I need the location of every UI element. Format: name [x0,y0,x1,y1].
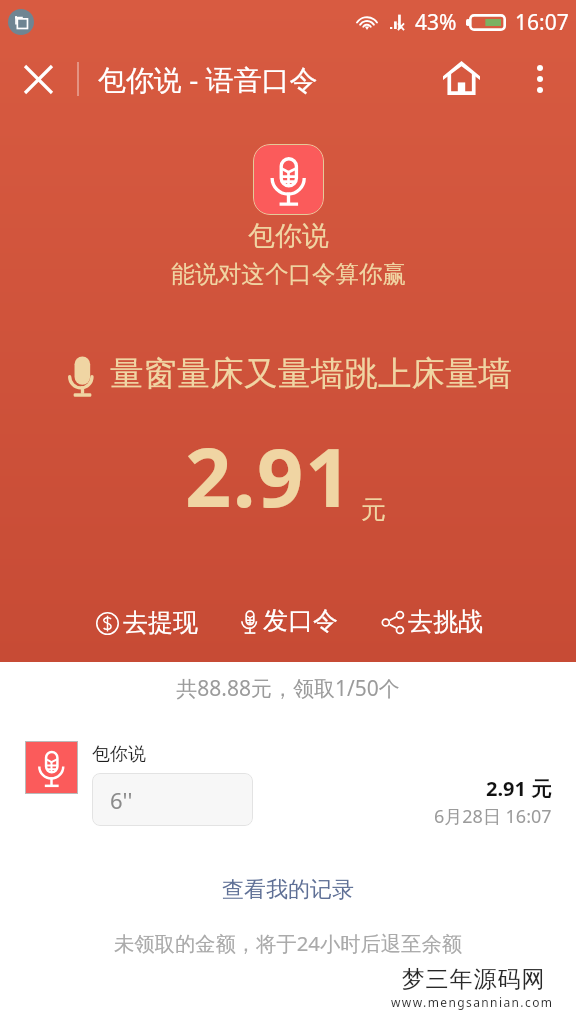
button[interactable]: 查看我的记录 [212,868,364,912]
button[interactable]: Home [437,54,485,102]
button[interactable]: More options [516,55,564,103]
staticText: 发口令 [263,605,338,636]
staticText: 去挑战 [408,606,483,637]
button[interactable]: Sender avatar [25,741,78,794]
staticText: 量窗量床又量墙跳上床量墙 [110,353,512,395]
staticText: 包你说 - 语音口令 [98,60,318,98]
button[interactable]: Play 6 second voice [92,773,253,826]
staticText: 2.91 元 [486,775,552,802]
staticText: 43% [415,8,457,37]
button[interactable]: Close [14,55,62,103]
staticText: 未领取的金额，将于24小时后退至余额 [0,929,576,957]
staticText: 梦三年源码网 [401,965,545,994]
button[interactable]: 发口令 [233,597,346,646]
staticText: 2.91 [185,420,353,530]
staticText: 去提现 [123,607,198,638]
staticText: 包你说 [248,219,329,253]
staticText: 包你说 [92,743,146,766]
staticText: 16:07 [515,8,569,37]
button[interactable]: Voice password [253,144,324,215]
button[interactable]: 去挑战 [373,598,491,647]
staticText: 元 [361,494,386,525]
staticText: 6'' [110,785,133,815]
staticText: 共88.88元，领取1/50个 [0,674,576,703]
button[interactable]: 去提现 [88,599,206,648]
staticText: 查看我的记录 [222,876,354,904]
staticText: 能说对这个口令算你赢 [171,259,406,289]
staticText: www.mengsannian.com [391,994,554,1010]
staticText: 6月28日 16:07 [434,804,552,829]
